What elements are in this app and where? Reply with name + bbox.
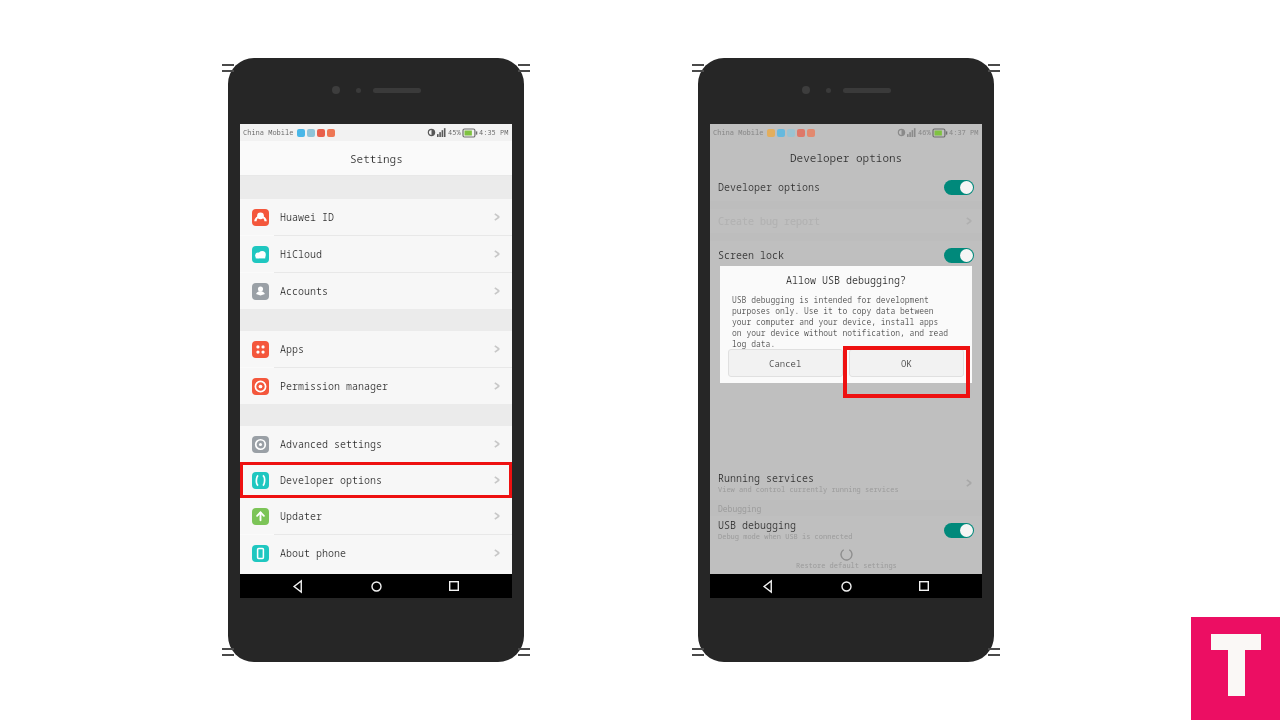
staticText: China Mobile [243,128,294,138]
button[interactable]: Home [826,574,866,598]
staticText: 46% [918,128,931,138]
button[interactable]: Cancel [728,349,843,377]
staticText: OK [901,357,912,369]
button[interactable]: Huawei ID [240,199,512,235]
button[interactable]: HiCloud [240,236,512,272]
button[interactable]: Developer options [710,173,982,201]
button[interactable]: Recents [434,574,474,598]
button[interactable]: Advanced settings [240,426,512,462]
staticText: Running services [718,471,814,485]
staticText: USB debugging [718,518,796,532]
staticText: USB debugging is intended for developmen… [732,294,948,349]
button[interactable]: Developer options [240,462,512,498]
staticText: 4:37 PM [949,128,979,138]
staticText: Huawei ID [280,210,334,224]
button[interactable]: Apps [240,331,512,367]
staticText: Settings [350,151,403,166]
button[interactable]: Running services [710,466,982,500]
button[interactable]: Logo [1191,617,1280,720]
staticText: Developer options [280,473,382,487]
staticText: 4:35 PM [479,128,509,138]
button[interactable]: Accounts [240,273,512,309]
button[interactable]: Toggle [944,248,974,263]
button[interactable]: Screen lock [710,241,982,269]
button[interactable]: About phone [240,535,512,571]
button[interactable]: Home [356,574,396,598]
button[interactable]: Recents [904,574,944,598]
staticText: Create bug report [718,214,820,228]
button[interactable]: OK [849,349,964,377]
staticText: Allow USB debugging? [786,273,906,287]
button[interactable]: Permission manager [240,368,512,404]
staticText: Debugging [718,503,762,514]
staticText: Updater [280,509,322,523]
staticText: China Mobile [713,128,764,138]
staticText: 45% [448,128,461,138]
staticText: HiCloud [280,247,322,261]
button[interactable]: Toggle [944,180,974,195]
staticText: Permission manager [280,379,388,393]
button[interactable]: USB debugging [710,516,982,544]
staticText: View and control currently running servi… [718,485,899,495]
staticText: Advanced settings [280,437,382,451]
button[interactable]: Back [278,574,318,598]
staticText: Restore default settings [796,561,897,571]
staticText: Debug mode when USB is connected [718,532,853,542]
button[interactable]: Updater [240,498,512,534]
staticText: Screen lock [718,248,784,262]
staticText: Developer options [790,150,903,165]
staticText: Apps [280,342,304,356]
staticText: Accounts [280,284,328,298]
staticText: Developer options [718,180,820,194]
staticText: About phone [280,546,346,560]
button[interactable]: Back [748,574,788,598]
staticText: Cancel [769,357,802,369]
button[interactable]: Toggle [944,523,974,538]
